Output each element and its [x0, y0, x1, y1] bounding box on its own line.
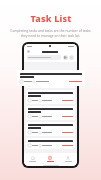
- button[interactable]: [27, 55, 61, 60]
- button[interactable]: [26, 122, 75, 136]
- button[interactable]: List view: [69, 55, 74, 60]
- button[interactable]: [17, 70, 85, 86]
- staticText: Task List: [30, 12, 72, 24]
- button[interactable]: [26, 106, 75, 120]
- staticText: Completing tasks and tasks are the numbe…: [10, 28, 91, 38]
- button[interactable]: Grid view: [63, 55, 68, 60]
- button[interactable]: Home: [24, 153, 41, 164]
- button[interactable]: Tasks: [41, 153, 59, 164]
- button[interactable]: Profile: [59, 153, 77, 164]
- button[interactable]: [26, 74, 75, 88]
- button[interactable]: Menu: [27, 50, 30, 53]
- button[interactable]: [26, 138, 75, 149]
- button[interactable]: [26, 90, 75, 104]
